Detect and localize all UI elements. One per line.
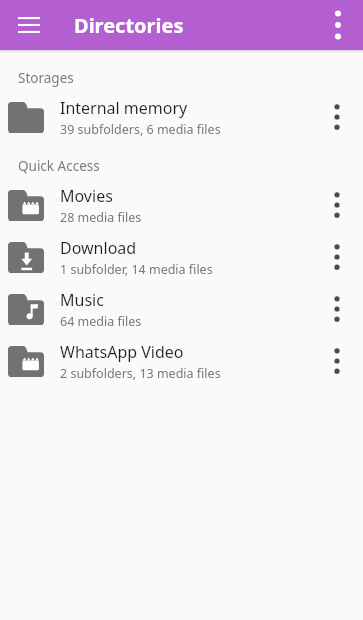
button[interactable]: Download [0,231,363,283]
button[interactable]: Music [0,283,363,335]
staticText: 28 media files [60,209,142,226]
staticText: Movies [60,185,113,207]
staticText: 64 media files [60,313,142,330]
staticText: Directories [74,12,184,39]
button[interactable]: More options for Download [317,237,357,277]
button[interactable]: More options for WhatsApp Video [317,341,357,381]
staticText: 2 subfolders, 13 media files [60,365,221,382]
button[interactable]: Internal memory [0,91,363,143]
button[interactable]: More options for Movies [317,185,357,225]
staticText: Download [60,237,137,259]
button[interactable]: Movies [0,179,363,231]
button[interactable]: More options [317,4,359,46]
staticText: WhatsApp Video [60,341,184,363]
button[interactable]: WhatsApp Video [0,335,363,387]
staticText: Storages [18,69,74,87]
staticText: 39 subfolders, 6 media files [60,121,221,138]
button[interactable]: More options for Music [317,289,357,329]
button[interactable]: More options for Internal memory [317,97,357,137]
button[interactable]: Open navigation drawer [8,4,50,46]
staticText: Music [60,289,104,311]
staticText: 1 subfolder, 14 media files [60,261,213,278]
staticText: Internal memory [60,97,188,119]
staticText: Quick Access [18,157,100,175]
